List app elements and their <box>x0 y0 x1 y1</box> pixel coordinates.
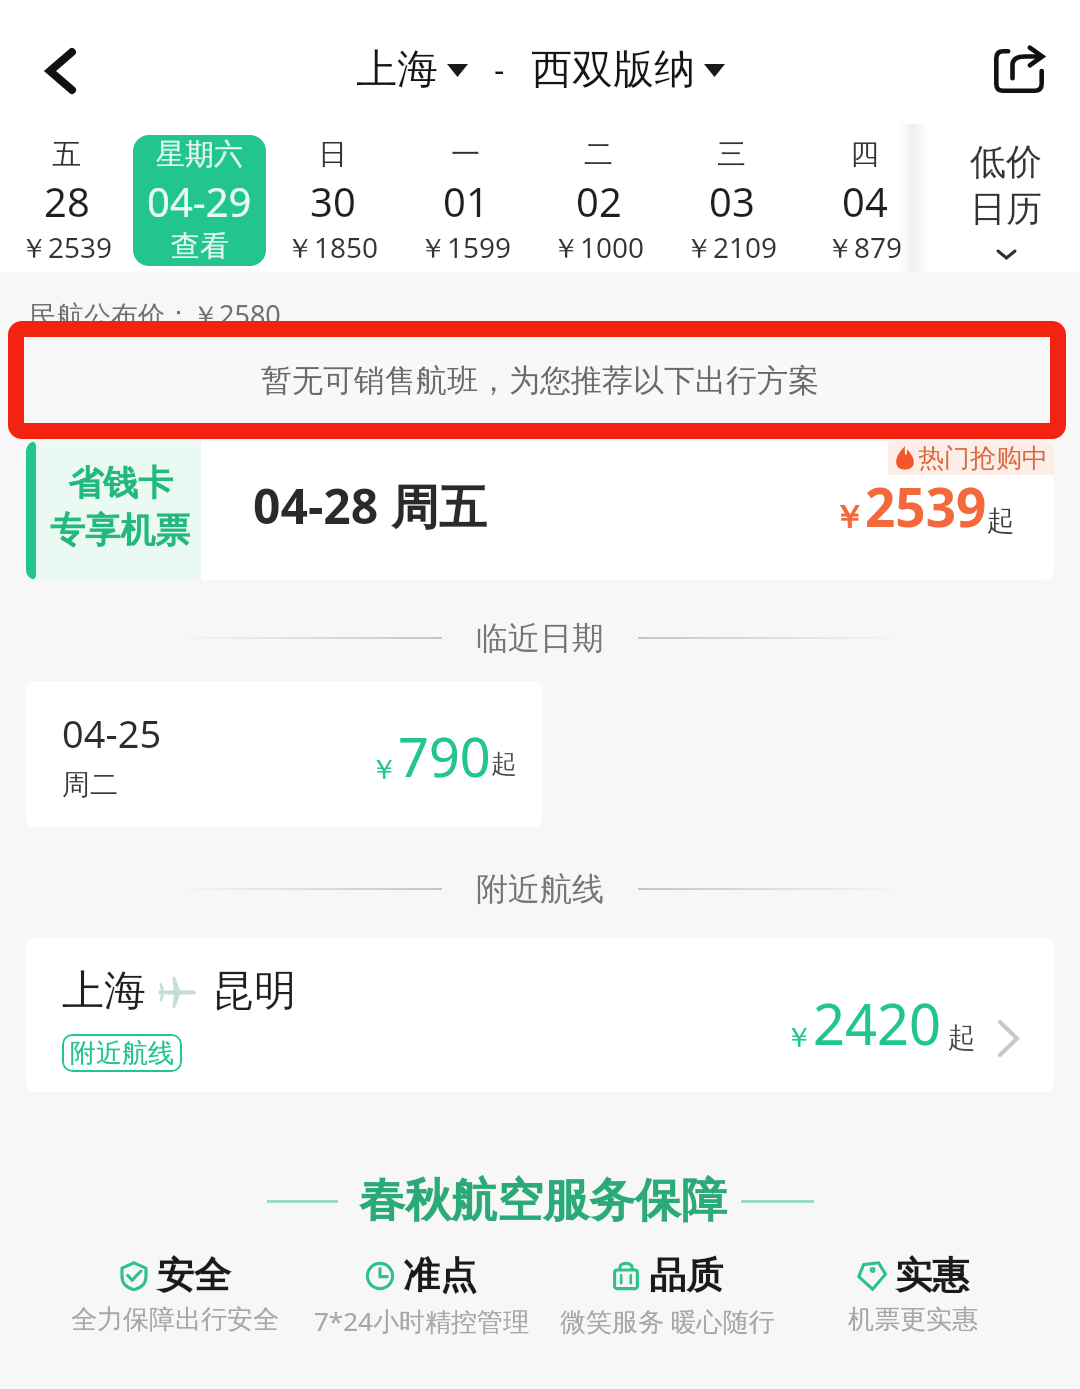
staticText: 04-29 <box>147 174 252 228</box>
staticText: 一 <box>451 136 480 173</box>
button[interactable]: 四 <box>798 127 931 275</box>
staticText: 四 <box>850 136 879 173</box>
button[interactable]: 三 <box>665 127 798 275</box>
staticText: ￥2539 <box>20 228 113 266</box>
button[interactable]: 二 <box>532 127 665 275</box>
staticText: 临近日期 <box>476 618 604 658</box>
staticText: 日 <box>318 136 347 173</box>
button[interactable]: 暂无可销售航班，为您推荐以下出行方案 <box>26 337 1054 423</box>
staticText: 起 <box>987 503 1015 538</box>
staticText: 西双版纳 <box>531 44 695 96</box>
staticText: 暂无可销售航班，为您推荐以下出行方案 <box>261 361 819 400</box>
button[interactable]: 上海 <box>356 44 468 96</box>
staticText: 04-25 <box>62 707 162 759</box>
staticText: - <box>494 48 505 92</box>
staticText: 起 <box>948 1020 976 1055</box>
staticText: 04-28 周五 <box>253 473 487 539</box>
button[interactable]: 日 <box>266 127 399 275</box>
staticText: 二 <box>584 136 613 173</box>
staticText: 04 <box>842 174 888 228</box>
staticText: 五 <box>52 136 81 173</box>
staticText: 03 <box>709 174 755 228</box>
staticText: 30 <box>310 174 356 228</box>
staticText: 安全 <box>157 1252 231 1299</box>
staticText: 准点 <box>403 1252 477 1299</box>
staticText: 机票更实惠 <box>848 1303 978 1336</box>
staticText: 790 <box>398 719 491 793</box>
staticText: 专享机票 <box>50 508 190 552</box>
staticText: 附近航线 <box>476 869 604 909</box>
staticText: 起 <box>491 748 517 781</box>
button[interactable]: 一 <box>399 127 532 275</box>
button[interactable]: 五 <box>0 127 133 275</box>
staticText: ￥1850 <box>286 228 379 266</box>
button[interactable]: Share <box>987 39 1051 103</box>
staticText: 星期六 <box>156 136 243 173</box>
staticText: 查看 <box>171 228 229 265</box>
staticText: ￥2109 <box>685 228 778 266</box>
staticText: 昆明 <box>212 965 296 1018</box>
staticText: 品质 <box>649 1252 723 1299</box>
button[interactable]: 上海 <box>26 938 1054 1092</box>
staticText: 周二 <box>62 767 118 802</box>
button[interactable]: 省钱卡 <box>26 441 1054 580</box>
staticText: 全力保障出行安全 <box>71 1303 279 1336</box>
staticText: ￥1000 <box>552 228 645 266</box>
staticText: 热门抢购中 <box>918 442 1048 475</box>
staticText: ￥ <box>370 752 398 787</box>
staticText: 三 <box>717 136 746 173</box>
button[interactable]: 星期六 <box>133 135 266 266</box>
staticText: 上海 <box>62 965 146 1018</box>
staticText: 春秋航空服务保障 <box>359 1172 727 1230</box>
staticText: 7*24小时精控管理 <box>314 1303 529 1339</box>
staticText: 2539 <box>865 470 987 542</box>
staticText: ￥ <box>785 1020 813 1055</box>
staticText: 微笑服务 暖心随行 <box>560 1303 775 1339</box>
staticText: 实惠 <box>895 1252 969 1299</box>
staticText: ￥879 <box>826 228 903 266</box>
staticText: 日历 <box>970 186 1042 231</box>
staticText: 01 <box>443 174 489 228</box>
staticText: ￥1599 <box>419 228 512 266</box>
button[interactable]: 西双版纳 <box>531 44 725 96</box>
button[interactable]: Back <box>31 41 91 101</box>
staticText: 低价 <box>970 139 1042 184</box>
staticText: 上海 <box>356 44 438 96</box>
staticText: 2420 <box>813 985 942 1061</box>
staticText: 附近航线 <box>70 1037 174 1070</box>
staticText: 28 <box>44 174 90 228</box>
button[interactable]: 低价 <box>932 124 1080 272</box>
staticText: 民航公布价：￥2580 <box>30 296 281 333</box>
button[interactable]: 04-25 <box>26 681 542 827</box>
staticText: 省钱卡 <box>68 461 173 505</box>
staticText: ￥ <box>833 497 865 537</box>
staticText: 02 <box>576 174 622 228</box>
